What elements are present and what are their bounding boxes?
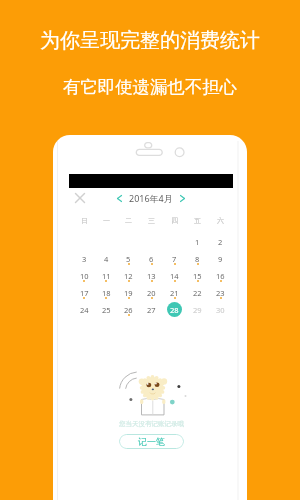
staticText: 四 [171,216,178,225]
button[interactable]: 5 [121,251,136,266]
button[interactable]: 24 [77,302,92,317]
button[interactable]: 26 [121,302,136,317]
staticText: 20 [147,288,156,298]
button[interactable]: 20 [144,285,159,300]
staticText: 13 [147,271,156,281]
button[interactable]: 12 [121,268,136,283]
staticText: 14 [170,271,179,281]
button[interactable]: 1 [190,234,205,249]
staticText: 有它即使遗漏也不担心 [63,76,237,98]
staticText: 21 [170,288,179,298]
button[interactable]: 8 [190,251,205,266]
button[interactable]: 22 [190,285,205,300]
button[interactable]: 10 [77,268,92,283]
button[interactable]: 30 [213,302,228,317]
staticText: 4 [104,254,109,264]
staticText: 记一笔 [138,436,165,447]
staticText: 6 [149,254,154,264]
staticText: 六 [217,216,224,225]
button[interactable]: 7 [167,251,182,266]
button[interactable]: 21 [167,285,182,300]
staticText: 日 [81,216,88,225]
button[interactable]: 13 [144,268,159,283]
staticText: 26 [124,305,133,315]
button[interactable]: Next month [177,193,188,204]
button[interactable]: 16 [213,268,228,283]
button[interactable]: 28 [167,302,182,317]
staticText: 2 [218,237,223,247]
staticText: 一 [103,216,110,225]
staticText: 五 [194,216,201,225]
button[interactable]: 4 [99,251,114,266]
staticText: 28 [170,305,179,315]
staticText: 8 [195,254,200,264]
button[interactable]: 29 [190,302,205,317]
staticText: 3 [82,254,87,264]
staticText: 27 [147,305,156,315]
button[interactable]: 14 [167,268,182,283]
staticText: 12 [124,271,133,281]
button[interactable]: 记一笔 [119,434,184,449]
staticText: 7 [172,254,177,264]
button[interactable]: 15 [190,268,205,283]
button[interactable]: 25 [99,302,114,317]
staticText: 24 [80,305,89,315]
button[interactable]: 27 [144,302,159,317]
staticText: 10 [80,271,89,281]
button[interactable]: 6 [144,251,159,266]
staticText: 23 [216,288,225,298]
staticText: 11 [102,271,111,281]
button[interactable]: 17 [77,285,92,300]
staticText: 30 [216,305,225,315]
staticText: 18 [102,288,111,298]
button[interactable]: 9 [213,251,228,266]
button[interactable]: 2 [213,234,228,249]
staticText: 17 [80,288,89,298]
staticText: 5 [126,254,131,264]
staticText: 2016年4月 [129,192,173,204]
staticText: 您当天没有记账记录哦 [119,420,184,428]
staticText: 二 [125,216,132,225]
staticText: 15 [193,271,202,281]
staticText: 9 [218,254,223,264]
button[interactable]: Previous month [114,193,125,204]
button[interactable]: 11 [99,268,114,283]
button[interactable]: 19 [121,285,136,300]
button[interactable]: 3 [77,251,92,266]
staticText: 29 [193,305,202,315]
button[interactable]: 23 [213,285,228,300]
staticText: 1 [195,237,200,247]
staticText: 三 [148,216,155,225]
staticText: 为你呈现完整的消费统计 [40,28,260,53]
button[interactable]: 18 [99,285,114,300]
staticText: 22 [193,288,202,298]
button[interactable]: Close [71,189,89,207]
staticText: 16 [216,271,225,281]
staticText: 25 [102,305,111,315]
staticText: 19 [124,288,133,298]
